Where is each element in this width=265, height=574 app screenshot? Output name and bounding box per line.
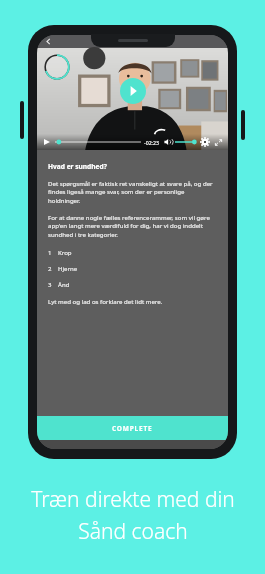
staticText: 1 [48,248,52,256]
button[interactable]: Play [42,137,52,147]
button[interactable]: COMPLETE [37,416,228,440]
staticText: Sånd coach [78,517,188,546]
button[interactable]: Settings [200,137,210,147]
button[interactable]: Mute [163,137,173,147]
staticText: Krop [58,248,72,256]
staticText: Lyt med og lad os forklare det lidt mere… [48,297,163,305]
button[interactable]: Play video [120,78,146,104]
staticText: Det spørgsmål er faktisk ret vanskeligt … [48,179,217,205]
button[interactable]: Back [42,35,55,48]
staticText: Ånd [58,280,70,288]
staticText: -02:23 [144,139,159,146]
staticText: Træn direkte med din [31,485,235,514]
staticText: 3 [48,280,52,288]
staticText: 2 [48,264,52,272]
button[interactable]: Volume level [175,137,197,147]
staticText: For at danne nogle fælles referenceramme… [48,213,217,239]
button[interactable]: Seek [55,137,141,147]
staticText: Hvad er sundhed? [48,162,107,171]
staticText: COMPLETE [112,424,153,433]
button[interactable]: Fullscreen [213,137,223,147]
staticText: Hjerne [58,264,78,272]
